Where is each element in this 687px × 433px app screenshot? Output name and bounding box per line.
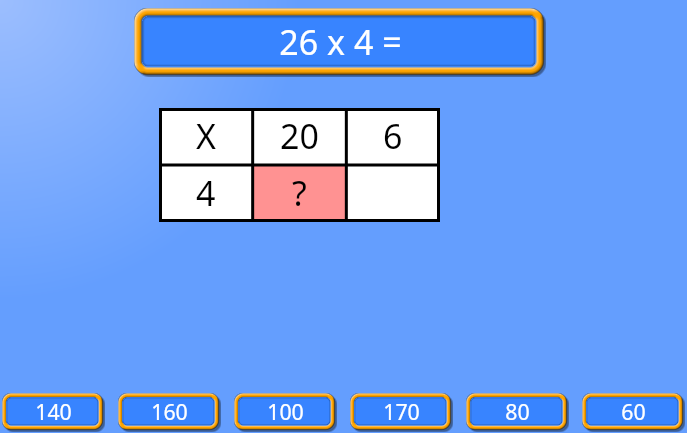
staticText: 20 bbox=[280, 113, 319, 159]
button[interactable]: Answer 160 bbox=[118, 393, 221, 432]
staticText: 160 bbox=[151, 397, 188, 426]
staticText: 140 bbox=[35, 397, 72, 426]
staticText: 6 bbox=[383, 113, 403, 159]
staticText: 60 bbox=[621, 397, 646, 426]
button[interactable]: Answer 80 bbox=[466, 393, 569, 432]
button[interactable]: Answer 140 bbox=[2, 393, 105, 432]
staticText: X bbox=[196, 113, 216, 159]
button[interactable]: Question: 26 times 4 equals bbox=[134, 8, 546, 77]
staticText: 80 bbox=[505, 397, 530, 426]
staticText: 4 bbox=[196, 170, 216, 216]
staticText: ? bbox=[292, 170, 307, 216]
staticText: 100 bbox=[267, 397, 304, 426]
button[interactable]: Answer 170 bbox=[350, 393, 453, 432]
staticText: 170 bbox=[383, 397, 420, 426]
button[interactable]: Answer 60 bbox=[582, 393, 685, 432]
staticText: 26 x 4 = bbox=[279, 19, 402, 65]
button[interactable]: Answer 100 bbox=[234, 393, 337, 432]
